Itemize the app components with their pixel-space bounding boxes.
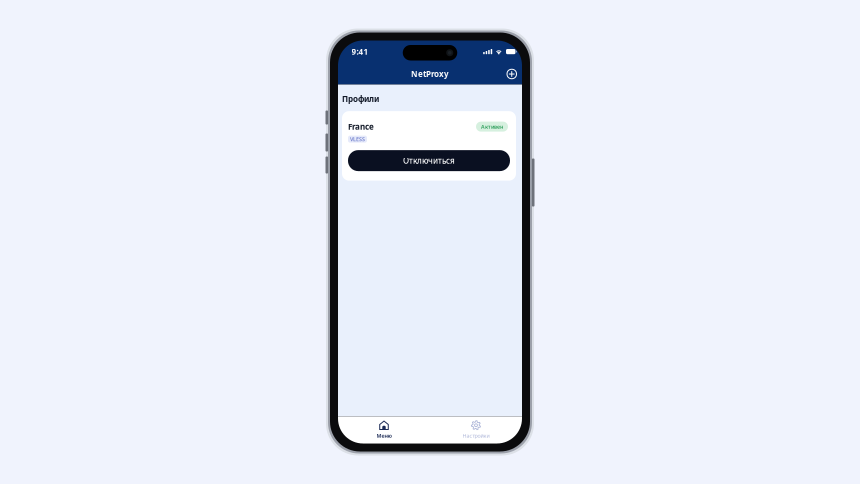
staticText: Профили [342,93,379,104]
staticText: Меню [376,432,391,439]
staticText: VLESS [350,136,365,143]
staticText: NetProxy [411,69,449,79]
button[interactable]: Настройки [430,416,522,443]
staticText: France [348,121,374,132]
staticText: Отключиться [403,155,455,166]
button[interactable]: Меню [338,416,430,443]
staticText: Активен [481,123,503,130]
staticText: 9:41 [351,46,368,57]
staticText: Настройки [462,432,489,439]
button[interactable]: Отключиться [348,150,510,171]
button[interactable]: Add profile [503,65,520,83]
